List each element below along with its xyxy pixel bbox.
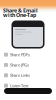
staticText: Share Links [10, 73, 30, 78]
button[interactable]: Share JPGs [4, 62, 40, 68]
staticText: with One-Tap [3, 11, 36, 19]
button[interactable]: Share PDFs [4, 52, 40, 57]
staticText: Share & Email [3, 7, 38, 14]
staticText: Listen Text [10, 83, 28, 88]
staticText: Share JPGs [10, 62, 29, 68]
button[interactable]: Share Links [4, 73, 40, 78]
button[interactable] [4, 88, 52, 94]
button[interactable]: Listen Text [4, 83, 40, 88]
staticText: Share PDFs [10, 52, 30, 57]
